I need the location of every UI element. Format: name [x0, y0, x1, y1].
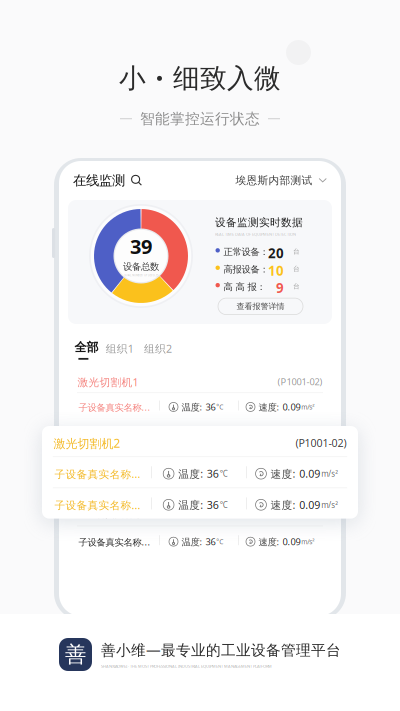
- staticText: 设备总数: [123, 261, 159, 272]
- staticText: 台: [293, 282, 300, 290]
- button[interactable]: 全部: [68, 324, 92, 344]
- staticText: 高报设备：: [223, 264, 268, 275]
- staticText: 速度:: [271, 498, 296, 512]
- staticText: 速度:: [271, 467, 296, 481]
- staticText: 0.09: [299, 498, 320, 512]
- staticText: 温度:: [181, 401, 202, 413]
- staticText: 9: [276, 279, 284, 297]
- staticText: 善: [65, 641, 86, 668]
- staticText: 善小维—最专业的工业设备管理平台: [101, 640, 341, 660]
- staticText: 台: [293, 247, 300, 256]
- staticText: 子设备真实名称...: [55, 467, 141, 481]
- staticText: 设备监测实时数据: [215, 216, 303, 229]
- staticText: 36: [205, 507, 215, 519]
- staticText: SHANXIAOWEI · THE MOST PROFESSIONAL INDU…: [101, 664, 272, 669]
- staticText: 温度:: [181, 507, 202, 519]
- staticText: 子设备真实名称...: [78, 536, 150, 548]
- staticText: 激光切割机3: [77, 478, 138, 492]
- staticText: 温度:: [181, 535, 202, 548]
- staticText: 0.09: [282, 535, 300, 548]
- staticText: 组织1: [106, 341, 134, 356]
- staticText: 查看报警详情: [236, 301, 284, 311]
- staticText: 埃恩斯内部测试: [235, 174, 312, 187]
- staticText: 子设备真实名称...: [78, 401, 150, 413]
- staticText: °C: [220, 468, 228, 479]
- staticText: 台: [293, 265, 300, 273]
- staticText: 10: [268, 262, 284, 279]
- staticText: TOTAL NUMBER OF DEVICES: [124, 273, 158, 277]
- staticText: m/s²: [301, 537, 314, 546]
- button[interactable]: 激光切割机1: [68, 368, 332, 418]
- staticText: 速度:: [258, 401, 279, 413]
- staticText: 速度:: [258, 535, 279, 548]
- staticText: 温度:: [178, 467, 203, 481]
- staticText: 0.09: [299, 467, 320, 481]
- staticText: m/s²: [321, 468, 338, 479]
- staticText: 细致入微: [173, 62, 281, 95]
- staticText: 组织2: [144, 341, 172, 356]
- staticText: 36: [205, 535, 215, 548]
- staticText: 39: [130, 233, 152, 260]
- staticText: 高 高 报：: [223, 281, 265, 293]
- staticText: 36: [207, 467, 219, 481]
- staticText: 36: [207, 498, 219, 512]
- staticText: 子设备真实名称...: [78, 507, 150, 520]
- staticText: (P1001-02): [277, 375, 322, 388]
- button[interactable]: 激光切割机3: [68, 469, 332, 554]
- staticText: °C: [216, 402, 223, 411]
- staticText: 智能掌控运行状态: [140, 110, 260, 128]
- staticText: 子设备真实名称...: [55, 498, 141, 512]
- staticText: 小: [119, 62, 146, 95]
- button[interactable]: 查看报警详情: [218, 298, 303, 315]
- staticText: 20: [268, 244, 284, 262]
- staticText: m/s²: [301, 402, 314, 411]
- button[interactable]: 埃恩斯内部测试: [235, 174, 327, 187]
- staticText: 全部: [74, 340, 98, 355]
- staticText: 0.09: [282, 401, 300, 413]
- staticText: 温度:: [178, 498, 203, 512]
- staticText: 36: [205, 401, 215, 413]
- staticText: °C: [216, 537, 223, 546]
- staticText: 0.09: [282, 507, 300, 519]
- staticText: m/s²: [321, 499, 338, 510]
- staticText: °C: [220, 499, 228, 510]
- staticText: 在线监测: [73, 172, 125, 189]
- staticText: (P1001-02): [296, 436, 347, 450]
- staticText: 速度:: [258, 507, 279, 519]
- button[interactable]: 在线监测: [73, 172, 142, 189]
- button[interactable]: 激光切割机2: [42, 426, 358, 519]
- staticText: 激光切割机2: [53, 435, 120, 451]
- staticText: 正常设备：: [223, 246, 268, 258]
- staticText: 激光切割机1: [77, 375, 138, 389]
- staticText: REAL TIME DATA OF EQUIPMENT DETECTION: [215, 232, 296, 237]
